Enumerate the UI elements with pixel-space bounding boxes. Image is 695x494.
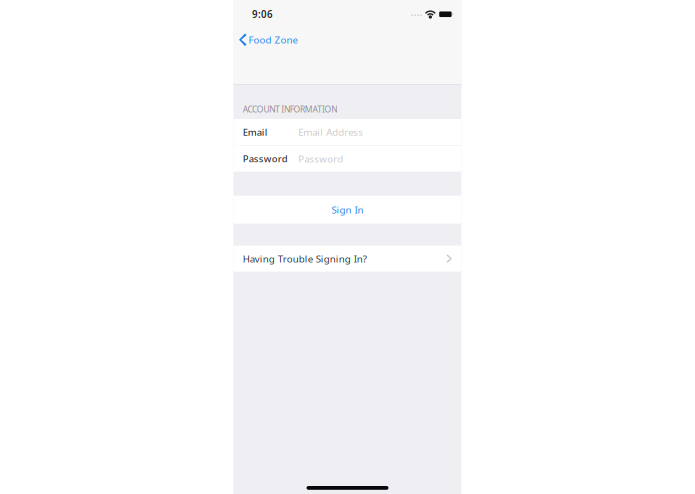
button[interactable]: Food Zone — [233, 31, 304, 48]
staticText: Email — [243, 126, 268, 138]
staticText: Email Address — [298, 125, 363, 139]
button[interactable]: Having Trouble Signing In? — [233, 246, 461, 272]
staticText: Having Trouble Signing In? — [243, 252, 367, 265]
staticText: Sign In — [331, 203, 363, 216]
staticText: Food Zone — [249, 33, 298, 46]
staticText: ACCOUNT INFORMATION — [243, 103, 337, 115]
button[interactable]: Email — [233, 119, 461, 145]
button[interactable]: Password — [233, 146, 461, 172]
staticText: Password — [243, 152, 288, 165]
staticText: Password — [298, 152, 343, 165]
button[interactable]: Sign In — [233, 196, 461, 224]
staticText: 9:06 — [252, 8, 273, 21]
